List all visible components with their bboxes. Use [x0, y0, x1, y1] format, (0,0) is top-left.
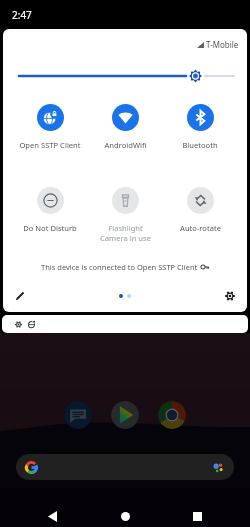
button[interactable]: Edit tiles: [11, 287, 29, 305]
button[interactable]: Messages: [64, 401, 92, 429]
staticText: AndroidWifi: [104, 140, 147, 150]
button[interactable]: Recents: [183, 502, 211, 527]
staticText: Auto-rotate: [180, 223, 221, 233]
button[interactable]: Do Not Disturb: [14, 187, 86, 233]
staticText: This device is connected to Open SSTP Cl…: [41, 262, 198, 272]
staticText: T-Mobile: [206, 39, 239, 50]
staticText: 2:47: [12, 8, 32, 22]
staticText: Camera in use: [100, 233, 151, 243]
button[interactable]: Search: [16, 454, 234, 480]
button[interactable]: Chrome: [158, 401, 186, 429]
button[interactable]: Auto-rotate: [164, 187, 236, 233]
button[interactable]: Open SSTP Client: [14, 104, 86, 150]
button[interactable]: Settings: [221, 287, 239, 305]
button[interactable]: Play Store: [111, 401, 139, 429]
button[interactable]: Home: [111, 502, 139, 527]
button[interactable]: Back: [38, 502, 66, 527]
staticText: Flashlight: [108, 223, 143, 233]
button[interactable]: AndroidWifi: [89, 104, 161, 150]
staticText: Do Not Disturb: [23, 223, 77, 233]
staticText: Open SSTP Client: [19, 140, 81, 150]
staticText: Bluetooth: [182, 140, 218, 150]
button[interactable]: Bluetooth: [164, 104, 236, 150]
button[interactable]: Flashlight: [89, 187, 161, 243]
